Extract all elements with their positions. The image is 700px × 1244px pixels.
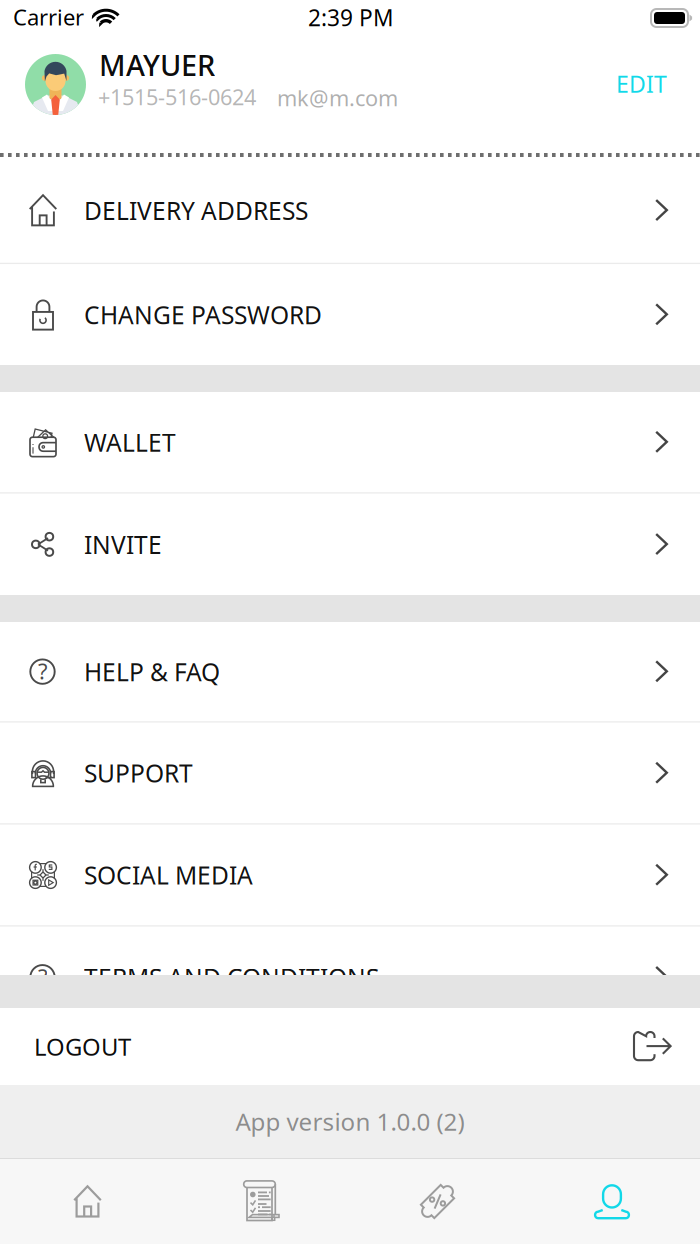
button[interactable]: SUPPORT	[0, 723, 700, 823]
button[interactable]: EDIT	[594, 51, 689, 116]
staticText: mk@m.com	[277, 83, 398, 113]
button[interactable]: Orders	[175, 1159, 350, 1244]
staticText: INVITE	[84, 528, 162, 561]
staticText: ?	[38, 962, 48, 992]
button[interactable]: ?	[0, 927, 700, 1028]
staticText: 2:39 PM	[308, 2, 394, 33]
staticText: ?	[38, 656, 48, 686]
staticText: DELIVERY ADDRESS	[84, 194, 308, 227]
staticText: HELP & FAQ	[84, 655, 220, 688]
button[interactable]: SOCIAL MEDIA	[0, 825, 700, 925]
staticText: App version 1.0.0 (2)	[235, 1105, 464, 1138]
staticText: CHANGE PASSWORD	[84, 298, 322, 331]
staticText: TERMS AND CONDITIONS	[84, 960, 379, 994]
staticText: +1515-516-0624	[98, 82, 256, 112]
button[interactable]: DELIVERY ADDRESS	[0, 158, 700, 263]
staticText: SOCIAL MEDIA	[84, 858, 253, 892]
staticText: LOGOUT	[34, 1030, 131, 1063]
button[interactable]: Offers	[350, 1159, 525, 1244]
button[interactable]: Home	[0, 1159, 175, 1244]
button[interactable]: ?	[0, 622, 700, 721]
staticText: Carrier	[13, 2, 84, 32]
button[interactable]: CHANGE PASSWORD	[0, 264, 700, 365]
staticText: WALLET	[84, 425, 176, 459]
button[interactable]: Profile	[525, 1159, 700, 1244]
staticText: MAYUER	[99, 45, 215, 84]
staticText: EDIT	[616, 68, 667, 99]
button[interactable]: LOGOUT	[0, 1008, 700, 1085]
button[interactable]: WALLET	[0, 392, 700, 492]
button[interactable]: INVITE	[0, 494, 700, 595]
staticText: SUPPORT	[84, 756, 193, 790]
